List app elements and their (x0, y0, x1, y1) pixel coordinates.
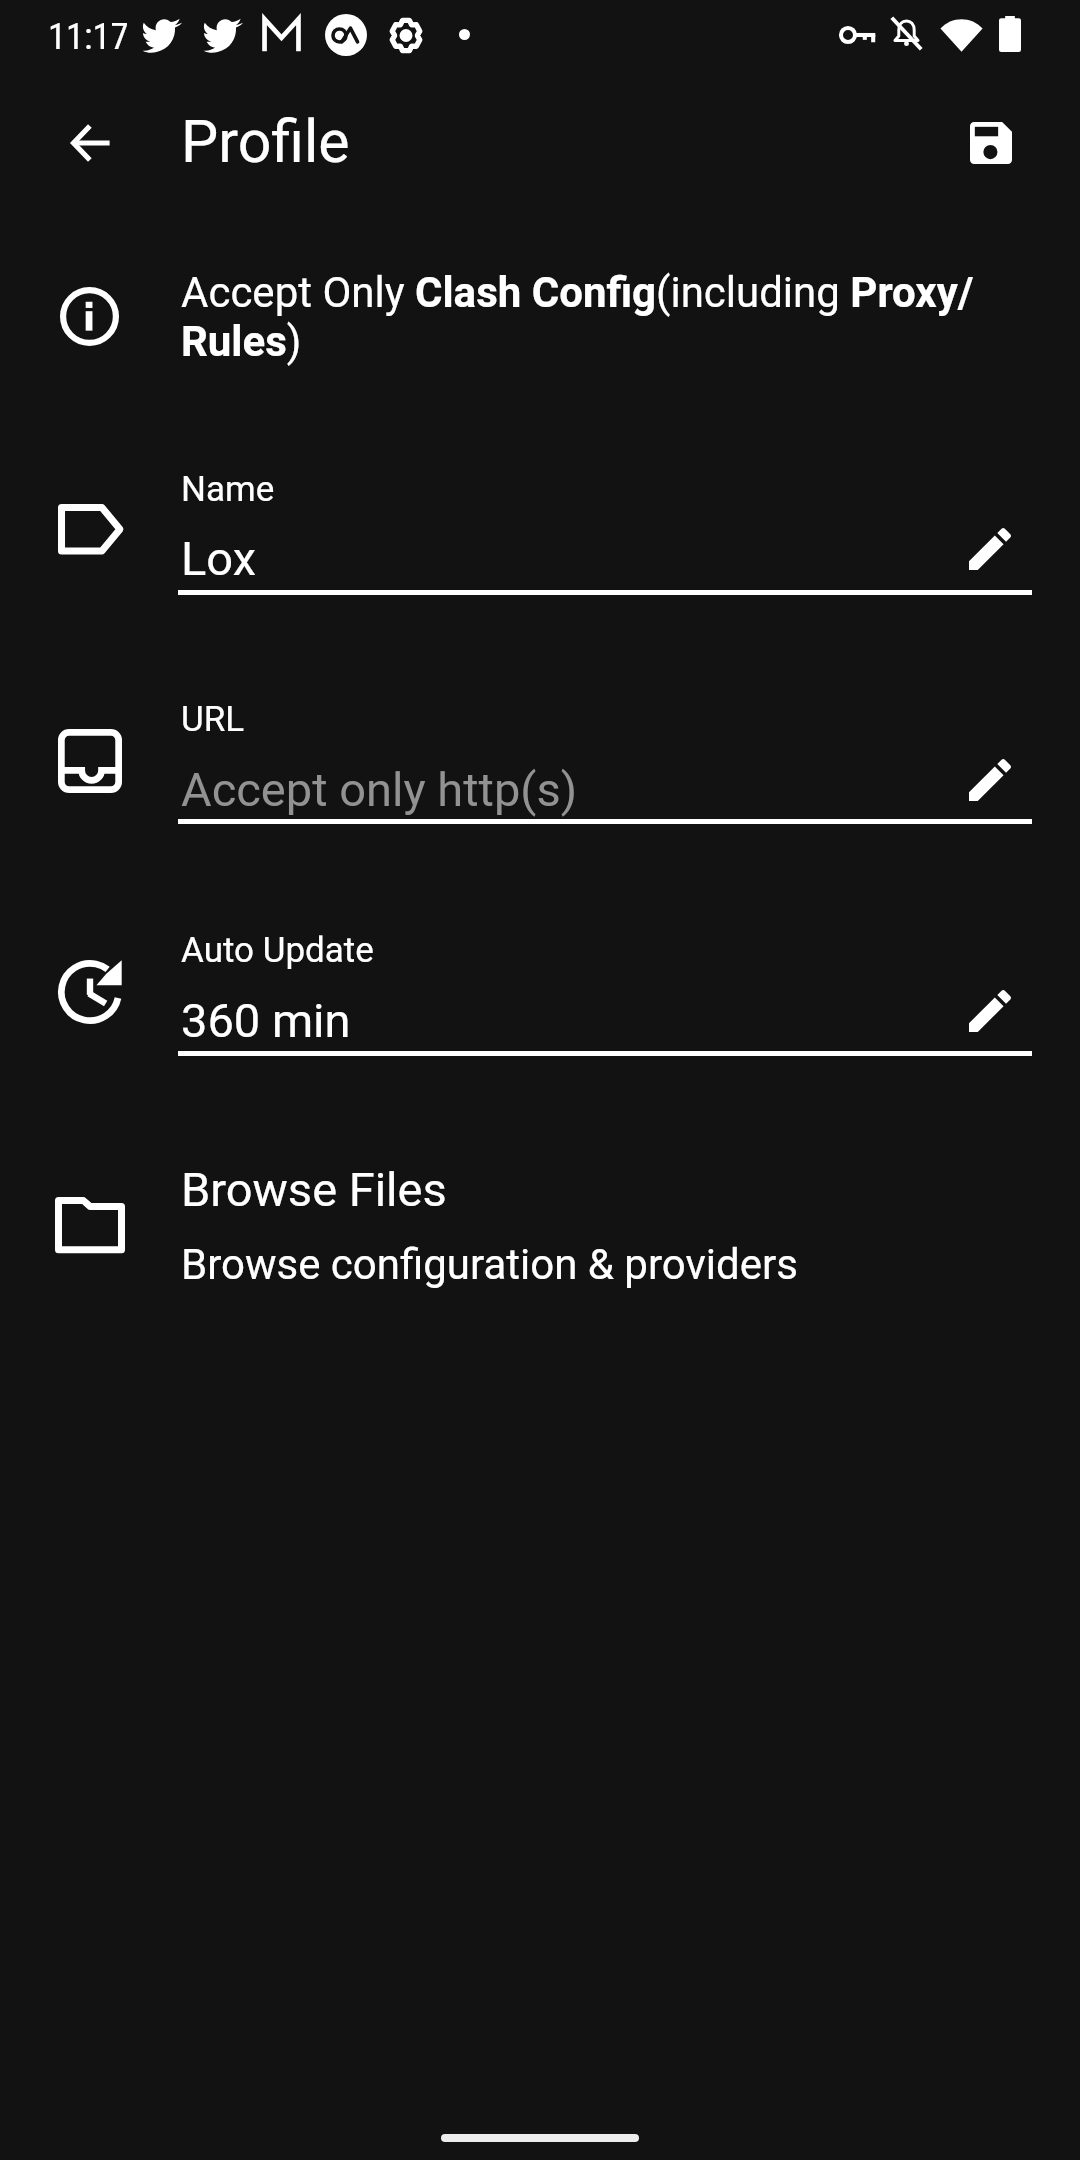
button[interactable] (0, 1150, 1080, 1310)
staticText: URL (181, 699, 245, 740)
staticText: Profile (181, 107, 350, 176)
staticText: Browse Files (181, 1162, 447, 1217)
staticText: Auto Update (181, 930, 374, 971)
button[interactable]: Back (37, 90, 142, 195)
staticText: Name (181, 469, 275, 510)
staticText: Browse configuration & providers (181, 1240, 798, 1289)
button[interactable] (0, 892, 1080, 1072)
staticText: Accept Only Clash Config(including Proxy… (181, 268, 1051, 366)
button[interactable] (0, 661, 1080, 841)
staticText: Lox (181, 531, 256, 586)
button[interactable]: Save (938, 90, 1043, 195)
button[interactable] (0, 431, 1080, 611)
staticText: 360 min (181, 993, 351, 1048)
staticText: Accept only http(s) (181, 762, 578, 817)
staticText: 11:17 (48, 15, 129, 58)
